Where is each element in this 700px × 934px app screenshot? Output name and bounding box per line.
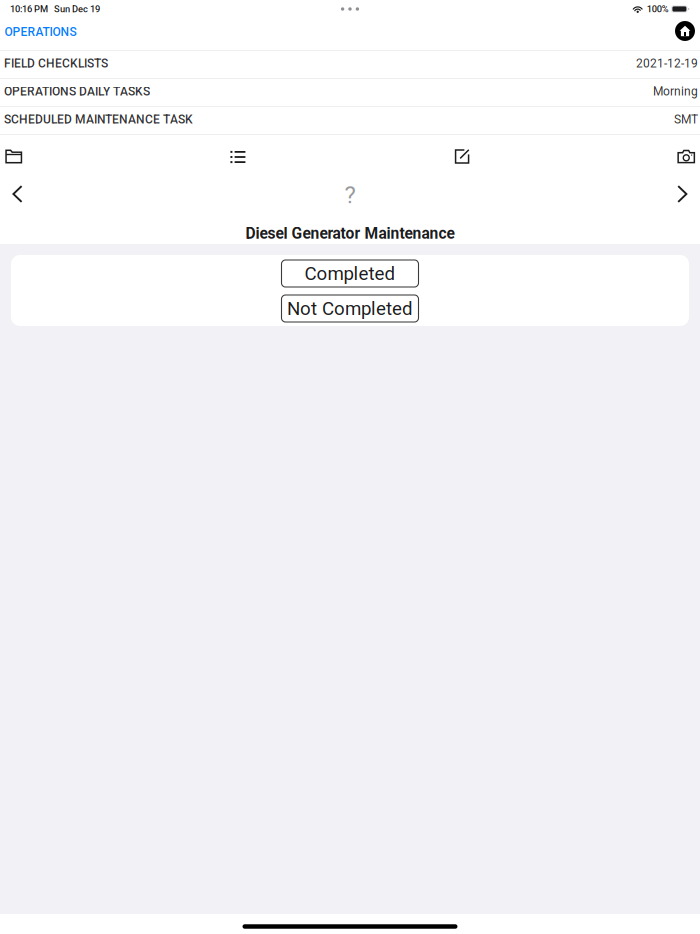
button[interactable]: FIELD CHECKLISTS [0, 51, 700, 79]
button[interactable]: Compose [448, 135, 476, 173]
button[interactable]: OPERATIONS [0, 22, 81, 46]
button[interactable]: OPERATIONS DAILY TASKS [0, 79, 700, 107]
staticText: SMT [674, 112, 698, 127]
staticText: 100% [647, 3, 669, 14]
staticText: ? [344, 181, 355, 209]
button[interactable]: Home [675, 24, 700, 44]
staticText: Completed [304, 263, 395, 284]
staticText: OPERATIONS [4, 25, 76, 39]
staticText: SCHEDULED MAINTENANCE TASK [4, 112, 193, 127]
button[interactable]: List [224, 135, 252, 173]
staticText: OPERATIONS DAILY TASKS [4, 84, 150, 99]
staticText: FIELD CHECKLISTS [4, 56, 108, 71]
button[interactable]: Help [332, 173, 368, 211]
staticText: Diesel Generator Maintenance [245, 224, 454, 243]
staticText: 10:16 PM [10, 3, 48, 14]
button[interactable]: Camera [672, 135, 700, 173]
button[interactable]: Completed [281, 260, 418, 287]
button[interactable]: Not Completed [281, 295, 418, 322]
staticText: Sun Dec 19 [48, 3, 100, 14]
button[interactable]: Files [0, 135, 27, 173]
button[interactable]: Previous [0, 173, 35, 211]
button[interactable]: Next [665, 173, 700, 211]
button[interactable]: SCHEDULED MAINTENANCE TASK [0, 107, 700, 135]
staticText: 2021-12-19 [636, 56, 698, 71]
staticText: Morning [653, 84, 698, 99]
staticText: Not Completed [287, 298, 413, 319]
